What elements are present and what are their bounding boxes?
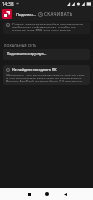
staticText: СКАЧИВАТЬ ОНЛАЙН: [44, 11, 90, 17]
staticText: Версия AnyDesk должна быть 7.0 или выше.: [6, 79, 84, 82]
button[interactable]: Recents: [20, 188, 38, 200]
button[interactable]: Подключиться вручную...: [3, 49, 90, 60]
staticText: 14:38: [2, 1, 14, 7]
button[interactable]: Не найдено ни одного ПК: [3, 65, 90, 85]
staticText: Убедитесь, что вы подключены к той же се…: [6, 73, 85, 76]
staticText: и что программа запущена на компьютере.: [6, 76, 83, 79]
button[interactable]: AnyDesk: [2, 9, 12, 19]
staticText: Совет: автоматизируйте управление устрой…: [12, 22, 89, 25]
staticText: Подключ...: [16, 12, 36, 17]
staticText: пароль или PIN-код при входе: [12, 28, 71, 31]
button[interactable]: Back: [56, 188, 74, 200]
staticText: любимом софтверном, чтобы не вводить каж…: [12, 25, 89, 28]
staticText: Подключиться вручную...: [7, 52, 47, 56]
staticText: Не найдено ни одного ПК: [12, 67, 57, 72]
button[interactable]: Home: [38, 188, 56, 200]
staticText: ЛОКАЛЬНАЯ СЕТЬ: [4, 43, 37, 48]
button[interactable]: Совет: автоматизируйте управление устрой…: [3, 22, 90, 34]
button[interactable]: СКАЧИВАТЬ ОНЛАЙН: [36, 9, 92, 19]
